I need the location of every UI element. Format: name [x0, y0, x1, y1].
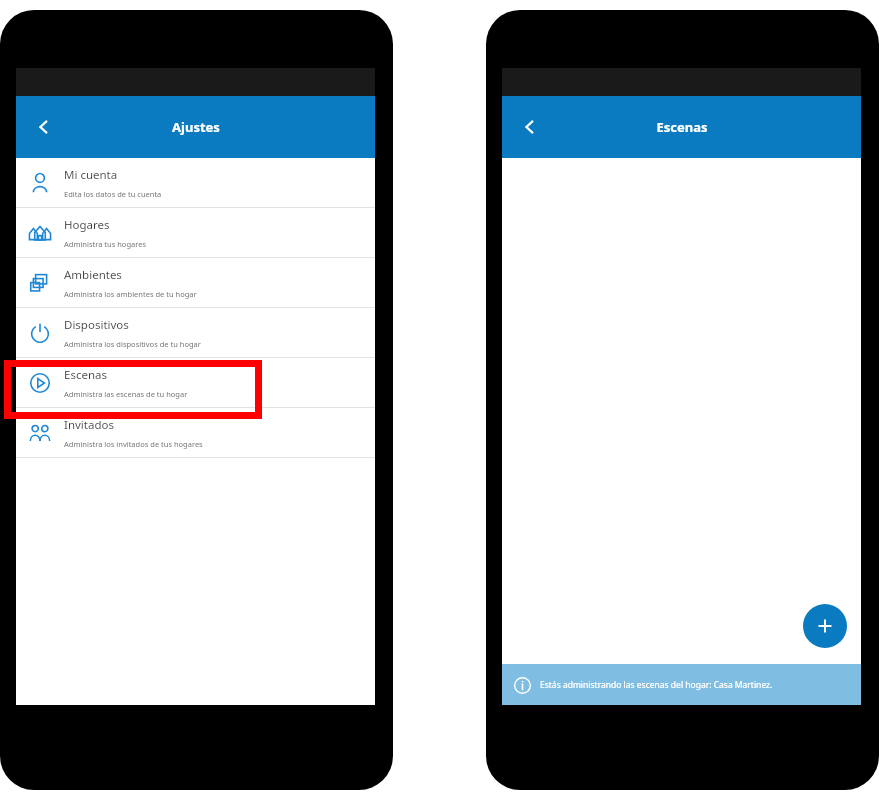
button[interactable]: Back [24, 107, 64, 147]
button[interactable]: Ambientes [16, 258, 375, 308]
button[interactable]: Escenas [16, 358, 375, 408]
staticText: Invitados [64, 417, 114, 433]
staticText: Administra los ambientes de tu hogar [64, 289, 197, 299]
button[interactable]: Invitados [16, 408, 375, 458]
staticText: Mi cuenta [64, 167, 118, 183]
staticText: Ajustes [172, 118, 220, 136]
staticText: Hogares [64, 217, 110, 233]
button[interactable]: Hogares [16, 208, 375, 258]
staticText: Escenas [64, 367, 107, 383]
button[interactable]: Mi cuenta [16, 158, 375, 208]
staticText: Dispositivos [64, 317, 129, 333]
staticText: Estás administrando las escenas del hoga… [540, 679, 773, 691]
button[interactable]: Back [510, 107, 550, 147]
staticText: Administra tus hogares [64, 239, 146, 249]
staticText: Edita los datos de tu cuenta [64, 189, 162, 199]
staticText: Ambientes [64, 267, 122, 283]
staticText: Administra las escenas de tu hogar [64, 389, 188, 399]
button[interactable]: Add scene [803, 604, 847, 648]
button[interactable]: Dispositivos [16, 308, 375, 358]
staticText: Administra los dispositivos de tu hogar [64, 339, 201, 349]
staticText: Administra los invitados de tus hogares [64, 439, 203, 449]
staticText: Escenas [656, 118, 708, 136]
